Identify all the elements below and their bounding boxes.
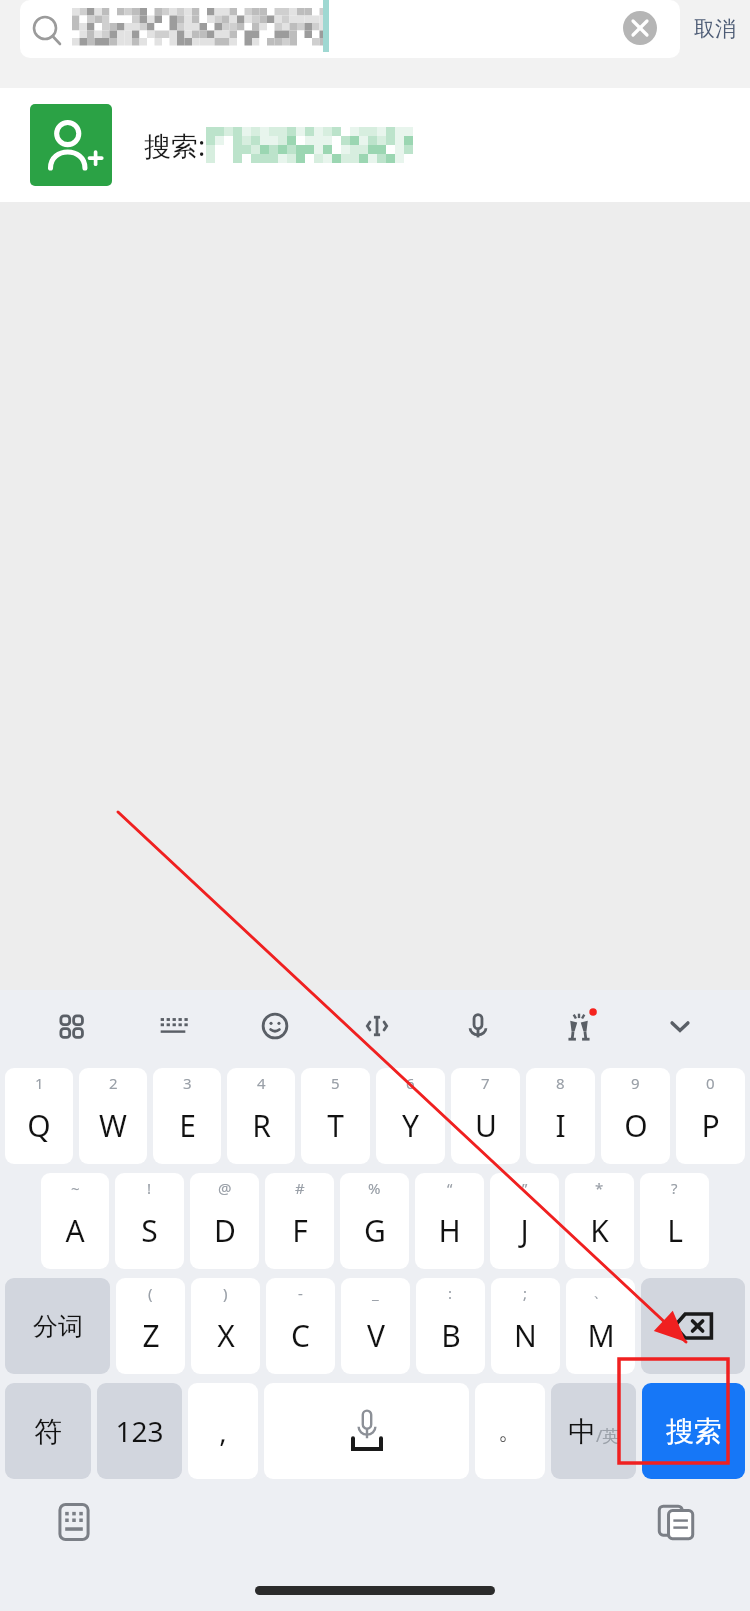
- staticText: “: [447, 1178, 453, 1198]
- staticText: R: [252, 1105, 271, 1146]
- button[interactable]: Backspace: [641, 1278, 745, 1374]
- button[interactable]: 0: [676, 1068, 745, 1164]
- button[interactable]: Space, voice input: [264, 1383, 469, 1479]
- button[interactable]: !: [115, 1173, 184, 1269]
- staticText: 分词: [33, 1311, 83, 1342]
- staticText: M: [587, 1315, 615, 1356]
- button[interactable]: 符: [5, 1383, 91, 1479]
- button[interactable]: ): [191, 1278, 260, 1374]
- staticText: 取消: [694, 16, 736, 42]
- button[interactable]: ?: [640, 1173, 709, 1269]
- button[interactable]: [20, 0, 680, 58]
- button[interactable]: “: [415, 1173, 484, 1269]
- staticText: 。: [498, 1416, 522, 1446]
- staticText: 符: [34, 1414, 62, 1449]
- staticText: J: [520, 1210, 529, 1251]
- button[interactable]: *: [565, 1173, 634, 1269]
- button[interactable]: (: [116, 1278, 185, 1374]
- staticText: *: [595, 1178, 604, 1198]
- staticText: _: [372, 1283, 379, 1303]
- button[interactable]: @: [190, 1173, 259, 1269]
- staticText: 7: [481, 1073, 490, 1093]
- button[interactable]: ;: [491, 1278, 560, 1374]
- staticText: S: [141, 1210, 158, 1251]
- button[interactable]: Emoji: [224, 990, 326, 1062]
- staticText: 搜索: [666, 1414, 722, 1449]
- staticText: Y: [402, 1105, 419, 1146]
- staticText: C: [291, 1315, 310, 1356]
- button[interactable]: 3: [153, 1068, 221, 1164]
- button[interactable]: ,: [188, 1383, 258, 1479]
- button[interactable]: Text edit: [326, 990, 427, 1062]
- staticText: X: [217, 1315, 235, 1356]
- staticText: G: [364, 1210, 386, 1251]
- button[interactable]: 9: [601, 1068, 670, 1164]
- staticText: 中: [568, 1414, 596, 1449]
- staticText: 5: [331, 1073, 340, 1093]
- button[interactable]: ~: [41, 1173, 109, 1269]
- button[interactable]: 取消: [694, 16, 736, 42]
- button[interactable]: Keyboard layout: [122, 990, 224, 1062]
- staticText: ,: [219, 1412, 227, 1450]
- button[interactable]: Clipboard: [650, 1496, 702, 1548]
- staticText: A: [65, 1210, 85, 1251]
- staticText: E: [179, 1105, 196, 1146]
- button[interactable]: _: [341, 1278, 410, 1374]
- button[interactable]: 、: [566, 1278, 635, 1374]
- button[interactable]: 搜索:: [0, 88, 750, 202]
- staticText: ~: [71, 1178, 80, 1198]
- button[interactable]: 8: [526, 1068, 595, 1164]
- staticText: (: [148, 1283, 153, 1303]
- button[interactable]: :: [416, 1278, 485, 1374]
- staticText: 4: [257, 1073, 266, 1093]
- button[interactable]: 搜索: [642, 1383, 745, 1479]
- button[interactable]: 7: [451, 1068, 520, 1164]
- button[interactable]: 1: [5, 1068, 73, 1164]
- staticText: H: [438, 1210, 461, 1251]
- button[interactable]: Voice input: [427, 990, 528, 1062]
- button[interactable]: Switch keyboard: [48, 1496, 100, 1548]
- staticText: I: [555, 1105, 566, 1146]
- staticText: 3: [183, 1073, 192, 1093]
- staticText: !: [147, 1178, 152, 1198]
- button[interactable]: 中: [551, 1383, 636, 1479]
- button[interactable]: ”: [490, 1173, 559, 1269]
- button[interactable]: 。: [475, 1383, 545, 1479]
- staticText: B: [441, 1315, 461, 1356]
- button[interactable]: 5: [301, 1068, 370, 1164]
- button[interactable]: 123: [97, 1383, 182, 1479]
- staticText: #: [295, 1178, 305, 1198]
- button[interactable]: 分词: [5, 1278, 110, 1374]
- staticText: @: [218, 1178, 232, 1198]
- staticText: ): [223, 1283, 228, 1303]
- button[interactable]: 6: [376, 1068, 445, 1164]
- staticText: U: [475, 1105, 497, 1146]
- staticText: %: [368, 1178, 381, 1198]
- staticText: ?: [671, 1178, 678, 1198]
- staticText: Z: [142, 1315, 160, 1356]
- staticText: 1: [35, 1073, 44, 1093]
- staticText: O: [624, 1105, 648, 1146]
- button[interactable]: Celebrate: [528, 990, 629, 1062]
- staticText: Q: [27, 1105, 51, 1146]
- button[interactable]: 4: [227, 1068, 295, 1164]
- staticText: 9: [631, 1073, 640, 1093]
- button[interactable]: Panels: [20, 990, 122, 1062]
- button[interactable]: %: [340, 1173, 409, 1269]
- staticText: 、: [593, 1283, 608, 1302]
- staticText: :: [448, 1283, 453, 1303]
- staticText: ;: [523, 1283, 528, 1303]
- button[interactable]: -: [266, 1278, 335, 1374]
- staticText: V: [367, 1315, 385, 1356]
- staticText: P: [701, 1105, 720, 1146]
- staticText: -: [298, 1283, 303, 1303]
- staticText: 6: [406, 1073, 415, 1093]
- staticText: K: [590, 1210, 609, 1251]
- button[interactable]: #: [265, 1173, 334, 1269]
- button[interactable]: Hide keyboard: [629, 990, 730, 1062]
- staticText: 2: [109, 1073, 118, 1093]
- staticText: D: [214, 1210, 236, 1251]
- button[interactable]: 2: [79, 1068, 147, 1164]
- staticText: W: [99, 1105, 127, 1146]
- staticText: N: [514, 1315, 537, 1356]
